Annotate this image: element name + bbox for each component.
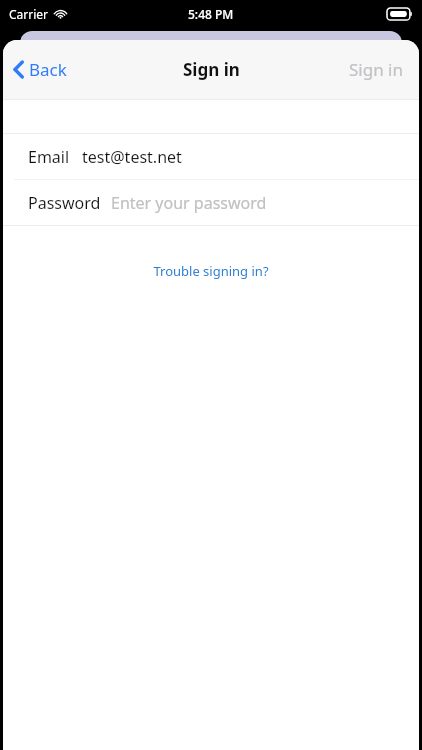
staticText: Carrier <box>9 6 49 22</box>
staticText: 5:48 PM <box>188 6 234 22</box>
staticText: Trouble signing in? <box>153 262 269 280</box>
staticText: Email <box>28 146 70 168</box>
staticText: Enter your password <box>111 192 267 214</box>
button[interactable]: Sign in <box>333 50 419 89</box>
button[interactable]: Trouble signing in? <box>141 257 281 285</box>
button[interactable]: Password <box>3 180 419 225</box>
staticText: Password <box>28 192 101 214</box>
staticText: Sign in <box>183 58 240 81</box>
staticText: Back <box>29 58 67 81</box>
staticText: Sign in <box>349 58 403 81</box>
staticText: test@test.net <box>82 146 182 168</box>
button[interactable]: Email <box>3 134 419 179</box>
button[interactable]: Back <box>3 52 77 87</box>
